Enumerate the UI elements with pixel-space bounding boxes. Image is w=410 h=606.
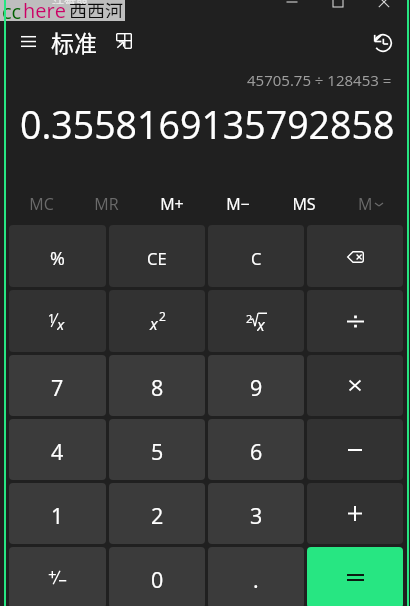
button[interactable]: MR <box>74 189 139 219</box>
button[interactable]: Minimize <box>269 0 315 13</box>
button[interactable]: C <box>208 225 304 287</box>
button[interactable]: Equals <box>307 547 403 606</box>
staticText: 4 <box>51 437 64 466</box>
button[interactable]: 8 <box>109 355 205 416</box>
staticText: x <box>257 314 265 334</box>
button[interactable]: 1 <box>9 483 106 544</box>
staticText: 计算器 <box>52 0 88 4</box>
button[interactable]: % <box>9 225 106 287</box>
button[interactable]: Backspace <box>307 225 403 287</box>
button[interactable]: x squared <box>109 290 205 352</box>
button[interactable]: 4 <box>9 419 106 480</box>
button[interactable]: M− <box>205 189 271 219</box>
button[interactable]: 6 <box>208 419 304 480</box>
button[interactable]: Close <box>361 0 407 13</box>
button[interactable]: CE <box>109 225 205 287</box>
staticText: 1 <box>51 501 64 530</box>
staticText: here <box>23 0 66 18</box>
button[interactable]: . <box>208 547 304 606</box>
button[interactable]: MC <box>9 189 74 219</box>
staticText: . <box>253 565 259 594</box>
staticText: cc <box>2 0 22 19</box>
staticText: 45705.75 ÷ 128453 = <box>247 70 392 90</box>
staticText: 5 <box>151 437 164 466</box>
button[interactable]: Keep on top <box>116 33 132 49</box>
button[interactable]: Plus <box>307 483 403 544</box>
staticText: 2 <box>151 501 164 530</box>
button[interactable]: History <box>373 32 393 52</box>
button[interactable]: Memory options <box>337 189 403 219</box>
staticText: x <box>57 314 65 332</box>
staticText: 8 <box>151 373 164 402</box>
staticText: C <box>251 247 262 269</box>
staticText: MS <box>292 193 316 215</box>
button[interactable]: One divided by x <box>9 290 106 352</box>
staticText: 标准 <box>51 25 97 58</box>
staticText: 2 <box>246 311 253 326</box>
staticText: 3 <box>250 501 263 530</box>
button[interactable]: Navigation menu <box>20 33 37 50</box>
button[interactable]: Square root <box>208 290 304 352</box>
staticText: % <box>50 246 65 271</box>
button[interactable]: 3 <box>208 483 304 544</box>
staticText: 6 <box>250 437 263 466</box>
staticText: 2 <box>159 308 166 324</box>
button[interactable]: 7 <box>9 355 106 416</box>
staticText: M+ <box>160 193 184 215</box>
button[interactable]: Maximize <box>315 0 361 13</box>
staticText: 1 <box>48 310 55 326</box>
staticText: M <box>358 193 373 215</box>
staticText: M− <box>226 193 250 215</box>
button[interactable]: Multiply <box>307 355 403 416</box>
button[interactable]: 9 <box>208 355 304 416</box>
staticText: 9 <box>250 373 263 402</box>
button[interactable]: M+ <box>139 189 205 219</box>
button[interactable]: 5 <box>109 419 205 480</box>
button[interactable]: Positive negative <box>9 547 106 606</box>
button[interactable]: 2 <box>109 483 205 544</box>
button[interactable]: Minus <box>307 419 403 480</box>
staticText: MC <box>29 193 54 215</box>
staticText: 0.3558169135792858 <box>20 99 395 147</box>
button[interactable]: MS <box>271 189 337 219</box>
staticText: 0 <box>151 565 164 594</box>
button[interactable]: Divide <box>307 290 403 352</box>
staticText: 西西河 <box>69 0 123 18</box>
staticText: 7 <box>51 373 64 402</box>
staticText: MR <box>94 193 119 215</box>
staticText: CE <box>147 247 167 269</box>
staticText: x <box>150 313 158 335</box>
button[interactable]: 0 <box>109 547 205 606</box>
